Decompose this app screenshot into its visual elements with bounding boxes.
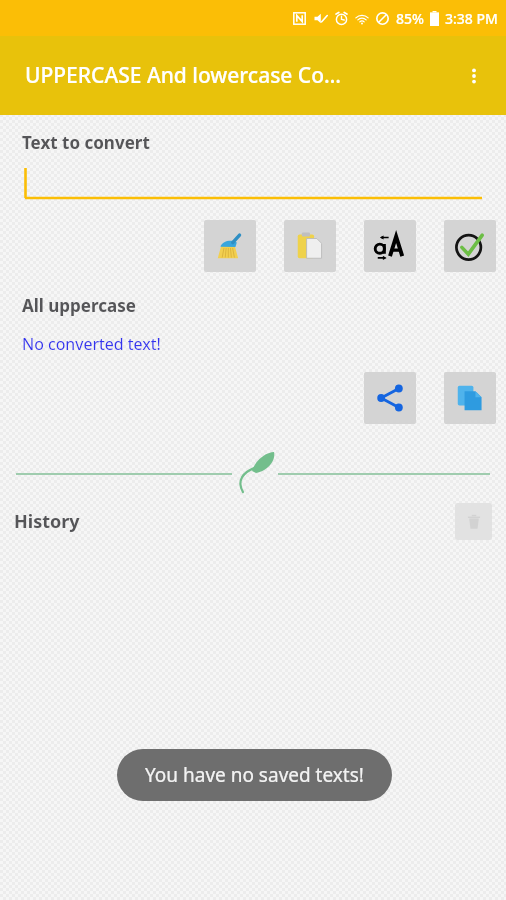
staticText: UPPERCASE And lowercase Co…	[25, 61, 342, 90]
staticText: 85%	[396, 9, 424, 28]
staticText: No converted text!	[22, 333, 161, 355]
staticText: Text to convert	[22, 131, 150, 154]
button[interactable]: Change case	[364, 220, 416, 272]
staticText: All uppercase	[22, 294, 136, 317]
button[interactable]: Confirm	[444, 220, 496, 272]
button[interactable]: Copy	[444, 372, 496, 424]
staticText: You have no saved texts!	[145, 762, 364, 788]
button[interactable]	[0, 154, 506, 211]
button[interactable]: Clear text	[204, 220, 256, 272]
staticText: History	[14, 509, 80, 534]
button[interactable]: More options	[450, 52, 498, 100]
button[interactable]: Paste	[284, 220, 336, 272]
button[interactable]: Clear history	[455, 503, 492, 540]
button[interactable]: Share	[364, 372, 416, 424]
staticText: 3:38 PM	[445, 9, 498, 28]
